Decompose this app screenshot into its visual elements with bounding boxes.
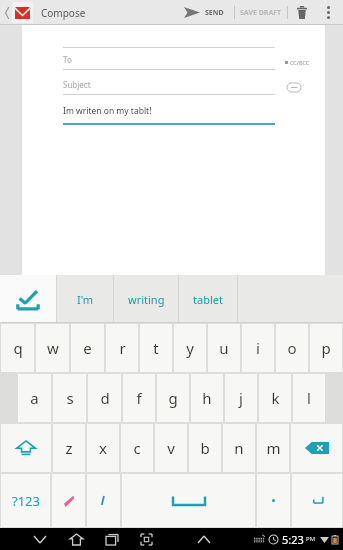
- staticText: i: [256, 338, 260, 358]
- button[interactable]: Symbols: [1, 474, 50, 527]
- button[interactable]: f: [123, 374, 155, 422]
- staticText: Im writen on my tablt!: [63, 105, 152, 117]
- staticText: e: [83, 338, 92, 358]
- staticText: l: [307, 388, 311, 408]
- staticText: Compose: [41, 6, 86, 20]
- staticText: m: [266, 438, 281, 458]
- button[interactable]: g: [157, 374, 189, 422]
- button[interactable]: Home: [66, 528, 86, 550]
- button[interactable]: b: [189, 424, 221, 472]
- staticText: Subject: [63, 79, 91, 90]
- staticText: SAVE DRAFT: [240, 8, 282, 18]
- button[interactable]: Recent apps: [102, 528, 122, 550]
- staticText: c: [133, 438, 141, 458]
- button[interactable]: w: [36, 324, 69, 372]
- button[interactable]: Backspace: [291, 424, 342, 472]
- button[interactable]: CC/BCC: [285, 59, 310, 66]
- button[interactable]: p: [310, 324, 342, 372]
- button[interactable]: I'm: [57, 275, 113, 323]
- button[interactable]: writing: [114, 275, 178, 323]
- staticText: writing: [128, 292, 165, 307]
- staticText: SEND: [205, 8, 224, 18]
- button[interactable]: Screenshot: [136, 528, 156, 550]
- staticText: r: [119, 338, 126, 358]
- button[interactable]: Emoji: [52, 474, 85, 527]
- staticText: o: [287, 338, 297, 358]
- button[interactable]: q: [1, 324, 34, 372]
- staticText: u: [219, 338, 229, 358]
- button[interactable]: tablet: [179, 275, 237, 323]
- button[interactable]: Hide keyboard: [30, 528, 50, 550]
- button[interactable]: y: [174, 324, 206, 372]
- button[interactable]: m: [257, 424, 289, 472]
- button[interactable]: i: [242, 324, 274, 372]
- staticText: q: [13, 338, 23, 358]
- button[interactable]: z: [53, 424, 85, 472]
- button[interactable]: n: [223, 424, 255, 472]
- staticText: b: [200, 438, 210, 458]
- staticText: p: [321, 338, 331, 358]
- button[interactable]: a: [18, 374, 51, 422]
- button[interactable]: e: [71, 324, 104, 372]
- staticText: j: [239, 388, 243, 408]
- button[interactable]: s: [53, 374, 86, 422]
- button[interactable]: SAVE DRAFT: [240, 0, 282, 25]
- button[interactable]: r: [106, 324, 138, 372]
- staticText: I'm: [77, 292, 94, 307]
- button[interactable]: SEND: [180, 0, 228, 25]
- button[interactable]: Accept suggestion: [0, 275, 56, 323]
- button[interactable]: t: [140, 324, 172, 372]
- staticText: a: [30, 388, 39, 408]
- staticText: t: [153, 338, 159, 358]
- button[interactable]: [238, 275, 343, 323]
- staticText: CC/BCC: [290, 59, 310, 66]
- staticText: g: [168, 388, 178, 408]
- staticText: z: [65, 438, 73, 458]
- button[interactable]: l: [293, 374, 325, 422]
- button[interactable]: k: [259, 374, 291, 422]
- staticText: k: [271, 388, 280, 408]
- staticText: To: [63, 54, 72, 65]
- button[interactable]: c: [121, 424, 153, 472]
- button[interactable]: Discard: [288, 0, 316, 25]
- staticText: d: [100, 388, 110, 408]
- button[interactable]: More options: [316, 0, 340, 25]
- button[interactable]: o: [276, 324, 308, 372]
- staticText: n: [234, 438, 244, 458]
- staticText: ?123: [12, 492, 40, 510]
- button[interactable]: Period: [257, 474, 290, 527]
- button[interactable]: Attach file: [287, 83, 301, 92]
- button[interactable]: x: [87, 424, 119, 472]
- staticText: PM: [306, 535, 316, 543]
- button[interactable]: u: [208, 324, 240, 372]
- staticText: 5:23: [282, 532, 304, 547]
- button[interactable]: h: [191, 374, 223, 422]
- button[interactable]: Space: [122, 474, 255, 527]
- staticText: x: [99, 438, 107, 458]
- button[interactable]: j: [225, 374, 257, 422]
- button[interactable]: To: [63, 54, 275, 70]
- button[interactable]: Expand: [194, 528, 214, 550]
- staticText: s: [66, 388, 74, 408]
- button[interactable]: Enter: [292, 474, 342, 527]
- staticText: tablet: [193, 292, 223, 307]
- staticText: v: [167, 438, 175, 458]
- staticText: y: [186, 338, 194, 358]
- staticText: h: [202, 388, 212, 408]
- button[interactable]: d: [88, 374, 121, 422]
- staticText: w: [47, 338, 59, 358]
- button[interactable]: Subject: [63, 79, 275, 95]
- button[interactable]: v: [155, 424, 187, 472]
- button[interactable]: Shift: [1, 424, 51, 472]
- button[interactable]: Comma: [87, 474, 120, 527]
- staticText: f: [136, 388, 142, 408]
- button[interactable]: Im writen on my tablt!: [63, 105, 275, 125]
